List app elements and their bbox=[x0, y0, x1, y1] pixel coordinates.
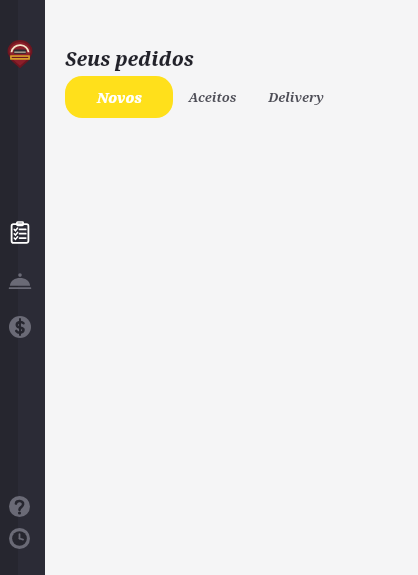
staticText: Seus pedidos bbox=[65, 46, 195, 72]
button[interactable]: Help bbox=[9, 496, 30, 517]
button[interactable]: Aceitos bbox=[173, 76, 251, 118]
staticText: Novos bbox=[97, 88, 142, 107]
button[interactable]: Novos bbox=[65, 76, 173, 118]
staticText: Delivery bbox=[268, 88, 324, 106]
staticText: Aceitos bbox=[188, 88, 237, 106]
button[interactable]: Restaurant logo bbox=[7, 41, 33, 67]
button[interactable]: Payments bbox=[9, 316, 31, 338]
button[interactable]: Orders bbox=[8, 221, 32, 245]
button[interactable]: Menu bbox=[8, 269, 32, 293]
button[interactable]: Delivery bbox=[251, 76, 341, 118]
button[interactable]: History bbox=[9, 528, 30, 549]
